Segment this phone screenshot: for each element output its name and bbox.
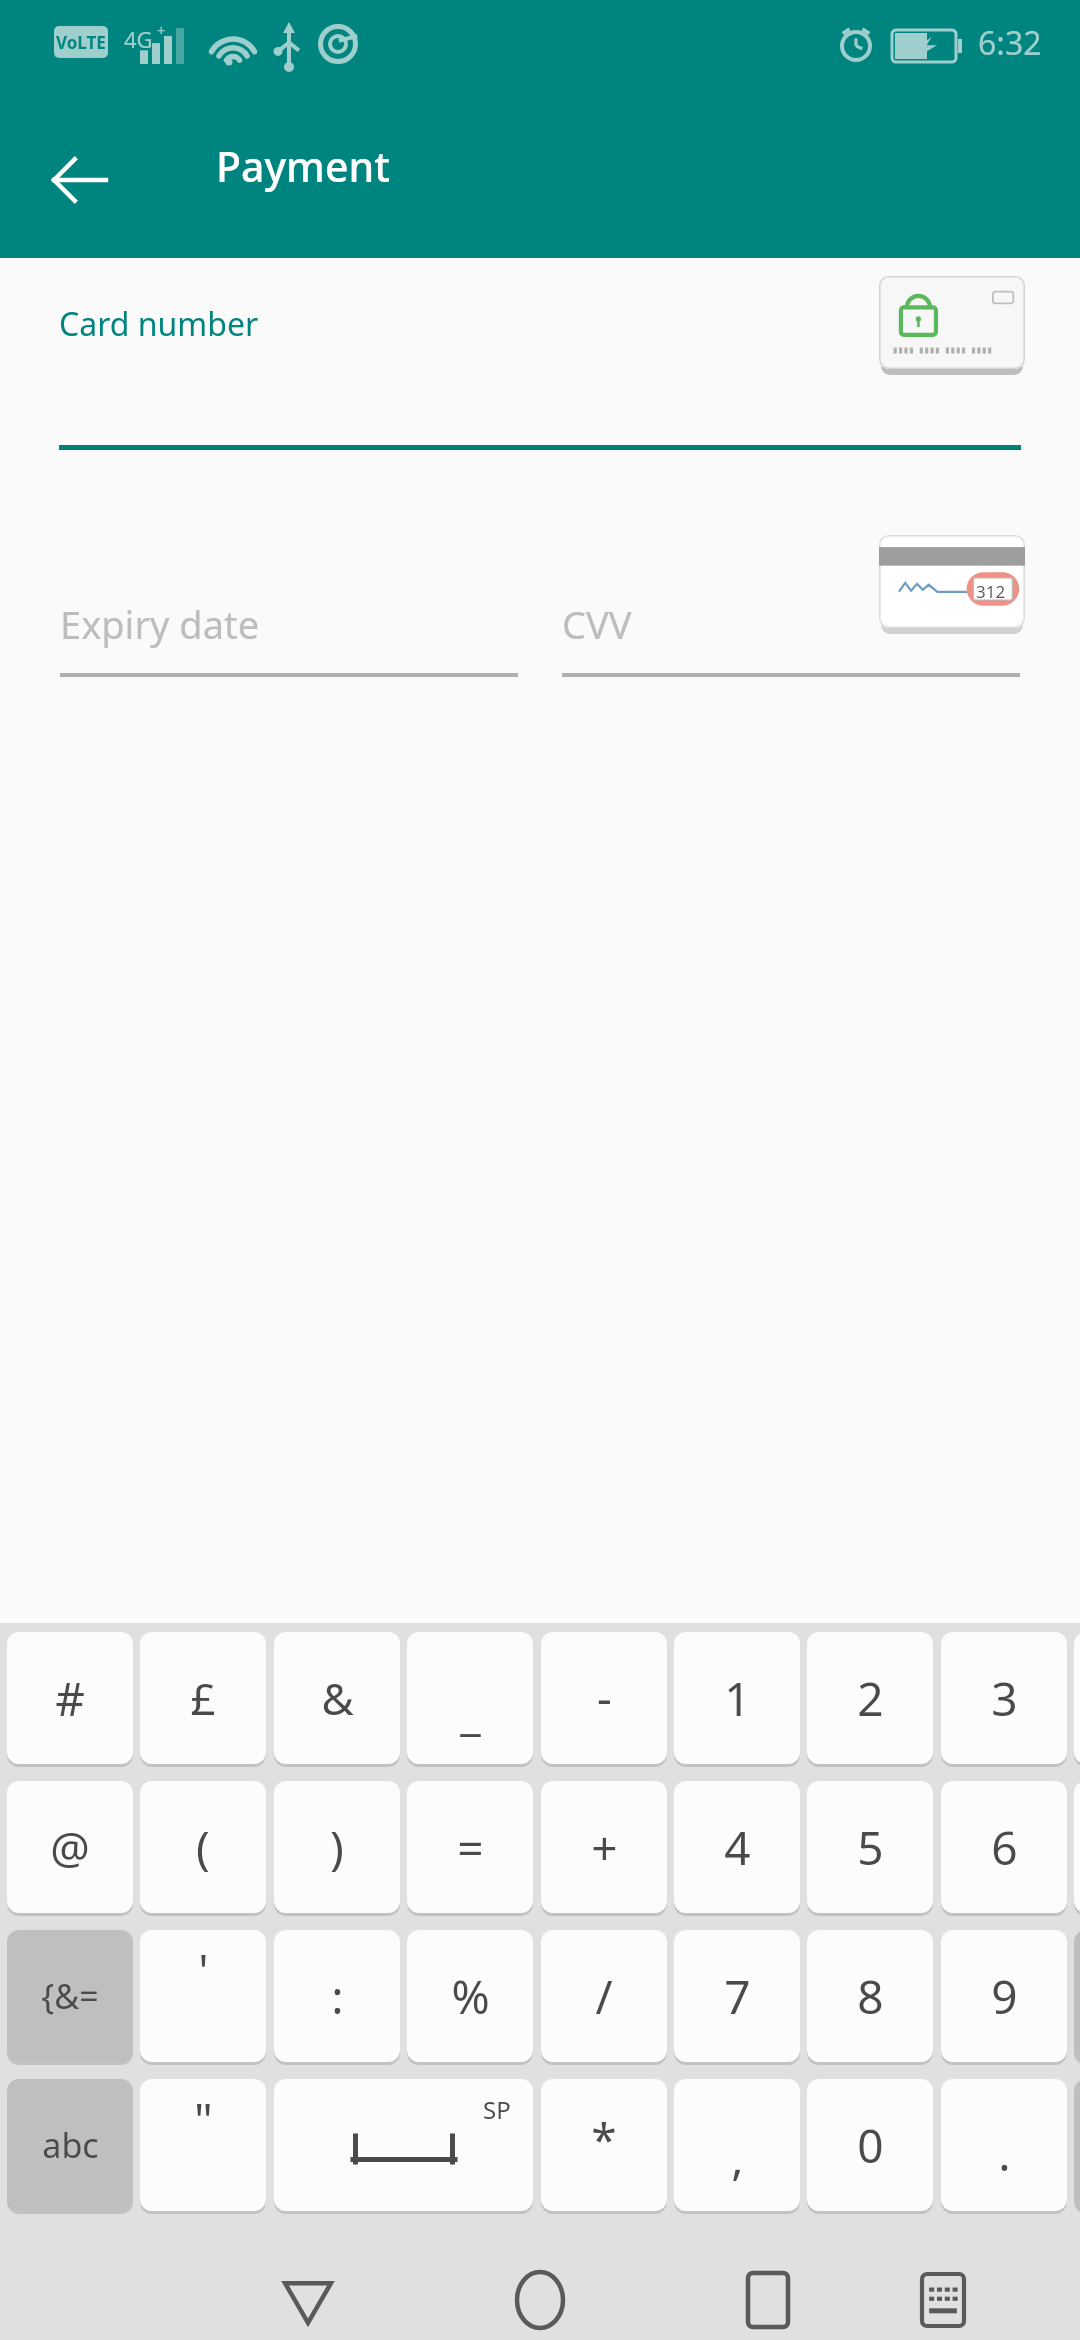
staticText: 8: [857, 1965, 884, 2028]
staticText: 4: [724, 1816, 751, 1879]
button[interactable]: ,: [674, 2079, 800, 2211]
staticText: *: [591, 2108, 617, 2171]
staticText: 6:32: [978, 21, 1042, 65]
button[interactable]: @: [7, 1781, 133, 1913]
staticText: £: [190, 1668, 216, 1728]
staticText: 4G: [124, 24, 153, 54]
staticText: SP: [483, 2093, 511, 2126]
staticText: :: [331, 1965, 344, 2028]
button[interactable]: Expiry date: [60, 570, 518, 680]
button[interactable]: &: [274, 1632, 400, 1764]
button[interactable]: ): [274, 1781, 400, 1913]
staticText: Payment: [216, 138, 390, 194]
staticText: 2: [857, 1667, 884, 1730]
button[interactable]: (: [140, 1781, 266, 1913]
button[interactable]: DEL: [1074, 1930, 1080, 2062]
staticText: Expiry date: [60, 598, 260, 650]
button[interactable]: 3: [941, 1632, 1067, 1764]
staticText: +: [591, 1816, 618, 1879]
button[interactable]: 9: [941, 1930, 1067, 2062]
button[interactable]: abc: [7, 2079, 133, 2211]
staticText: VoLTE: [56, 31, 106, 54]
button[interactable]: -: [541, 1632, 667, 1764]
button[interactable]: 8: [807, 1930, 933, 2062]
staticText: +: [157, 20, 166, 40]
button[interactable]: ?: [1074, 1632, 1080, 1764]
staticText: ,: [731, 2126, 744, 2189]
staticText: %: [451, 1965, 490, 2028]
button[interactable]: %: [407, 1930, 533, 2062]
staticText: =: [457, 1816, 484, 1879]
button[interactable]: #: [7, 1632, 133, 1764]
button[interactable]: Home: [490, 2251, 590, 2340]
button[interactable]: .: [941, 2079, 1067, 2211]
staticText: .: [998, 2122, 1011, 2185]
staticText: -: [597, 1665, 612, 1728]
staticText: 312: [976, 580, 1006, 603]
staticText: /: [595, 1965, 613, 2028]
button[interactable]: CVV: [562, 570, 1020, 680]
staticText: ': [198, 1939, 209, 2002]
button[interactable]: 7: [674, 1930, 800, 2062]
button[interactable]: /: [541, 1930, 667, 2062]
button[interactable]: ': [140, 1930, 266, 2062]
staticText: 3: [991, 1667, 1018, 1730]
staticText: abc: [42, 2122, 99, 2168]
button[interactable]: Switch keyboard: [893, 2251, 993, 2340]
staticText: 9: [991, 1965, 1018, 2028]
staticText: Card number: [59, 302, 259, 346]
button[interactable]: _: [407, 1632, 533, 1764]
staticText: 0: [857, 2114, 884, 2177]
staticText: 6: [991, 1816, 1018, 1879]
button[interactable]: :: [274, 1930, 400, 2062]
button[interactable]: Space: [274, 2079, 533, 2211]
staticText: ": [194, 2088, 213, 2151]
staticText: CVV: [562, 598, 632, 650]
staticText: (: [196, 1816, 210, 1879]
staticText: {&=: [41, 1973, 99, 2019]
button[interactable]: !: [1074, 1781, 1080, 1913]
button[interactable]: Back: [38, 138, 122, 222]
button[interactable]: 4: [674, 1781, 800, 1913]
button[interactable]: Card number: [0, 258, 1080, 473]
button[interactable]: £: [140, 1632, 266, 1764]
button[interactable]: ": [140, 2079, 266, 2211]
button[interactable]: 6: [941, 1781, 1067, 1913]
button[interactable]: =: [407, 1781, 533, 1913]
button[interactable]: 0: [807, 2079, 933, 2211]
staticText: @: [50, 1817, 90, 1877]
button[interactable]: +: [541, 1781, 667, 1913]
button[interactable]: *: [541, 2079, 667, 2211]
button[interactable]: 2: [807, 1632, 933, 1764]
staticText: 5: [857, 1816, 884, 1879]
button[interactable]: Back: [258, 2251, 358, 2340]
staticText: 7: [724, 1965, 751, 2028]
staticText: _: [460, 1681, 481, 1744]
button[interactable]: Recent apps: [718, 2251, 818, 2340]
button[interactable]: Enter: [1074, 2079, 1080, 2211]
button[interactable]: 5: [807, 1781, 933, 1913]
staticText: 1: [724, 1667, 751, 1730]
button[interactable]: {&=: [7, 1930, 133, 2062]
staticText: ): [330, 1816, 344, 1879]
staticText: #: [55, 1667, 85, 1730]
button[interactable]: 1: [674, 1632, 800, 1764]
staticText: &: [321, 1668, 354, 1728]
